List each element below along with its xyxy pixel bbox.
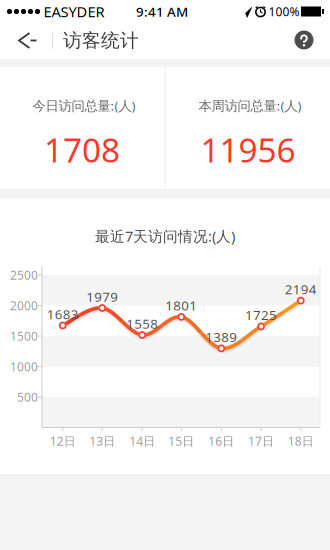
staticText: 1979 <box>86 288 118 305</box>
staticText: 13日 <box>89 433 115 449</box>
staticText: 1500 <box>10 328 38 344</box>
staticText: 1801 <box>165 296 197 314</box>
staticText: 2500 <box>10 267 38 283</box>
staticText: 11956 <box>200 127 295 172</box>
staticText: 今日访问总量:(人) <box>32 97 135 114</box>
staticText: 1708 <box>44 127 120 172</box>
staticText: 14日 <box>129 433 155 449</box>
staticText: 最近7天访问情况:(人) <box>95 226 235 246</box>
staticText: 17日 <box>248 433 274 449</box>
staticText: 16日 <box>208 433 234 449</box>
staticText: 100% <box>268 3 299 19</box>
button[interactable]: Help <box>294 30 313 49</box>
staticText: 2000 <box>10 297 38 313</box>
staticText: 1558 <box>126 315 158 332</box>
staticText: 1683 <box>47 305 79 323</box>
staticText: 1000 <box>10 358 38 374</box>
staticText: 500 <box>17 389 38 405</box>
staticText: 12日 <box>50 433 76 449</box>
staticText: 本周访问总量:(人) <box>198 97 301 114</box>
button[interactable]: Back <box>2 24 46 57</box>
staticText: 2194 <box>285 280 317 298</box>
staticText: 9:41 AM <box>136 3 188 20</box>
staticText: 18日 <box>288 433 314 449</box>
staticText: 1725 <box>245 306 277 324</box>
staticText: EASYDER <box>43 2 104 21</box>
staticText: 访客统计 <box>63 29 139 52</box>
staticText: 1389 <box>205 328 237 346</box>
staticText: 15日 <box>168 433 194 449</box>
